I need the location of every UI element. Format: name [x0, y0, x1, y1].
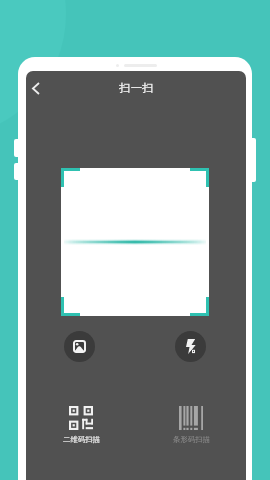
- button[interactable]: 扫一扫: [26, 71, 246, 105]
- button[interactable]: Choose image from gallery: [64, 331, 95, 362]
- button[interactable]: 二维码扫描: [26, 406, 136, 444]
- staticText: 条形码扫描: [173, 435, 210, 444]
- staticText: 二维码扫描: [63, 435, 100, 444]
- button[interactable]: 条形码扫描: [136, 406, 246, 444]
- button[interactable]: Back: [26, 75, 44, 101]
- staticText: 扫一扫: [119, 81, 154, 95]
- button[interactable]: Toggle flashlight: [175, 331, 206, 362]
